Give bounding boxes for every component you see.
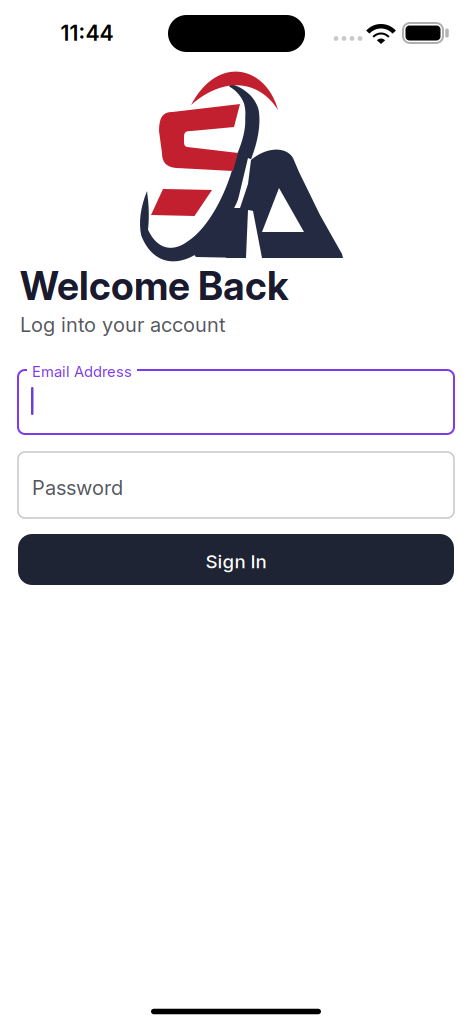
- button[interactable]: Email Address: [18, 370, 454, 434]
- staticText: Password: [32, 476, 123, 500]
- button[interactable]: Password: [18, 452, 454, 518]
- staticText: 11:44: [60, 20, 113, 46]
- staticText: Sign In: [205, 550, 266, 572]
- staticText: Log into your account: [20, 313, 226, 337]
- staticText: Welcome Back: [20, 263, 288, 309]
- button[interactable]: Sign In: [18, 534, 454, 585]
- staticText: Email Address: [32, 363, 132, 380]
